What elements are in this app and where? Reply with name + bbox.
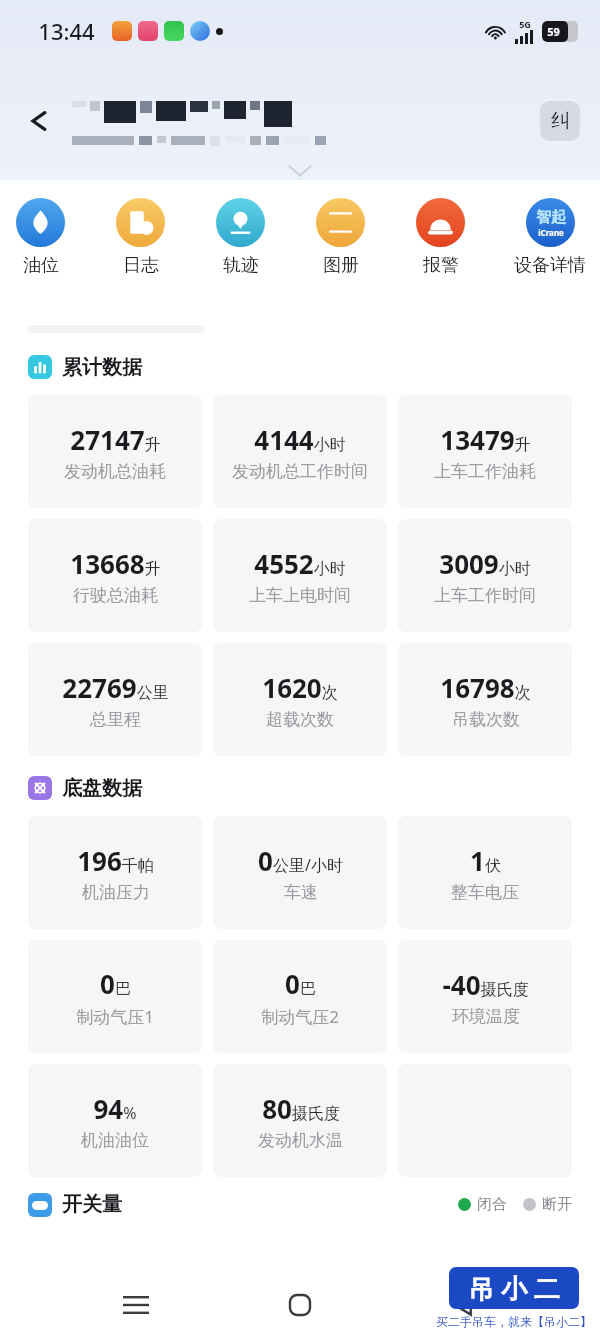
staticText: 0巴: [285, 966, 316, 1001]
button[interactable]: 吊 小 二: [449, 1267, 579, 1309]
staticText: 上车上电时间: [249, 585, 351, 606]
staticText: 闭合: [477, 1195, 507, 1214]
staticText: 发动机水温: [258, 1130, 343, 1151]
staticText: 图册: [323, 254, 359, 277]
button[interactable]: 13668升: [28, 519, 202, 632]
staticText: 上车工作时间: [434, 585, 536, 606]
button[interactable]: 图册: [314, 198, 367, 277]
button[interactable]: Back: [436, 1277, 492, 1333]
button[interactable]: 80摄氏度: [213, 1064, 387, 1177]
staticText: 80摄氏度: [262, 1091, 340, 1126]
staticText: 发动机总油耗: [64, 461, 166, 482]
staticText: 94%: [93, 1091, 137, 1126]
staticText: 制动气压2: [261, 1005, 339, 1028]
staticText: 机油油位: [81, 1130, 149, 1151]
staticText: 设备详情: [514, 254, 586, 277]
staticText: 买二手吊车，就来【吊小二】: [436, 1314, 592, 1329]
staticText: 断开: [542, 1195, 572, 1214]
staticText: 超载次数: [266, 709, 334, 730]
staticText: 吊载次数: [452, 709, 520, 730]
staticText: 纠: [551, 109, 570, 133]
staticText: 4552小时: [254, 546, 346, 581]
staticText: -40摄氏度: [442, 967, 529, 1002]
staticText: 发动机总工作时间: [232, 461, 368, 482]
staticText: 行驶总油耗: [73, 585, 158, 606]
button[interactable]: 轨迹: [214, 198, 267, 277]
button[interactable]: 13479升: [398, 395, 572, 508]
button[interactable]: 16798次: [398, 643, 572, 756]
staticText: 开关量: [62, 1192, 122, 1217]
staticText: 轨迹: [223, 254, 259, 277]
staticText: 智起: [536, 208, 566, 227]
staticText: 59: [547, 24, 560, 39]
staticText: 1伏: [470, 843, 501, 878]
staticText: 整车电压: [451, 882, 519, 903]
staticText: 车速: [284, 882, 318, 903]
button[interactable]: 0公里/小时: [213, 816, 387, 929]
staticText: 报警: [423, 254, 459, 277]
staticText: 16798次: [440, 670, 531, 705]
button[interactable]: Home: [272, 1277, 328, 1333]
button[interactable]: 1伏: [398, 816, 572, 929]
staticText: 13:44: [38, 16, 95, 46]
button[interactable]: 94%: [28, 1064, 202, 1177]
staticText: iCrane: [538, 227, 564, 238]
button[interactable]: 纠: [540, 101, 580, 141]
staticText: 4144小时: [254, 422, 346, 457]
staticText: 机油压力: [82, 882, 150, 903]
staticText: 27147升: [70, 422, 161, 457]
staticText: 22769公里: [62, 670, 169, 705]
staticText: 日志: [123, 254, 159, 277]
button[interactable]: Recents: [108, 1277, 164, 1333]
staticText: 0公里/小时: [258, 843, 343, 878]
staticText: 上车工作油耗: [434, 461, 536, 482]
button[interactable]: 0巴: [213, 940, 387, 1053]
button[interactable]: 0巴: [28, 940, 202, 1053]
button[interactable]: 油位: [14, 198, 67, 277]
button[interactable]: Back: [18, 99, 62, 143]
staticText: 13668升: [70, 546, 161, 581]
button[interactable]: 27147升: [28, 395, 202, 508]
staticText: 油位: [23, 254, 59, 277]
staticText: 196千帕: [77, 843, 154, 878]
staticText: 吊 小 二: [468, 1270, 560, 1306]
button[interactable]: 4552小时: [213, 519, 387, 632]
staticText: 底盘数据: [62, 776, 142, 801]
button[interactable]: 4144小时: [213, 395, 387, 508]
staticText: 13479升: [440, 422, 531, 457]
staticText: 0巴: [100, 966, 131, 1001]
button[interactable]: 3009小时: [398, 519, 572, 632]
button[interactable]: -40摄氏度: [398, 940, 572, 1053]
button[interactable]: 智起: [514, 198, 586, 277]
staticText: 总里程: [90, 709, 141, 730]
button[interactable]: 22769公里: [28, 643, 202, 756]
button[interactable]: 1620次: [213, 643, 387, 756]
button[interactable]: 日志: [114, 198, 167, 277]
staticText: 3009小时: [439, 546, 531, 581]
staticText: 5G: [519, 18, 531, 30]
button[interactable]: 196千帕: [28, 816, 202, 929]
button[interactable]: 报警: [414, 198, 467, 277]
staticText: 环境温度: [452, 1006, 520, 1027]
staticText: 制动气压1: [76, 1005, 154, 1028]
staticText: 1620次: [262, 670, 338, 705]
staticText: 累计数据: [62, 355, 142, 380]
